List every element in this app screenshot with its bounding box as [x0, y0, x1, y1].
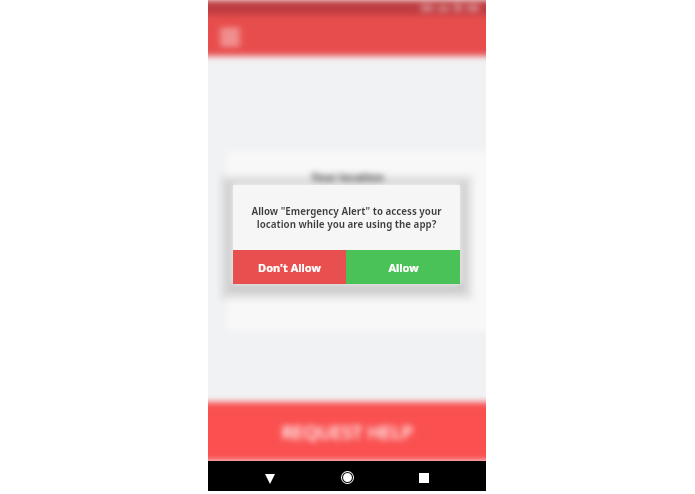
button[interactable]: REQUEST HELP [190, 402, 504, 461]
button[interactable]: Don't Allow [233, 250, 346, 284]
button[interactable]: Allow [346, 250, 460, 284]
staticText: Allow "Emergency Alert" to access your l… [251, 205, 442, 231]
button[interactable]: Back [248, 468, 292, 490]
staticText: REQUEST HELP [281, 419, 413, 444]
staticText: Allow [388, 260, 419, 275]
button[interactable]: Recent apps [402, 467, 446, 489]
button[interactable]: Open navigation menu [219, 25, 241, 47]
button[interactable]: Home [325, 466, 369, 488]
staticText: Your location [311, 169, 384, 184]
staticText: Don't Allow [258, 260, 321, 275]
